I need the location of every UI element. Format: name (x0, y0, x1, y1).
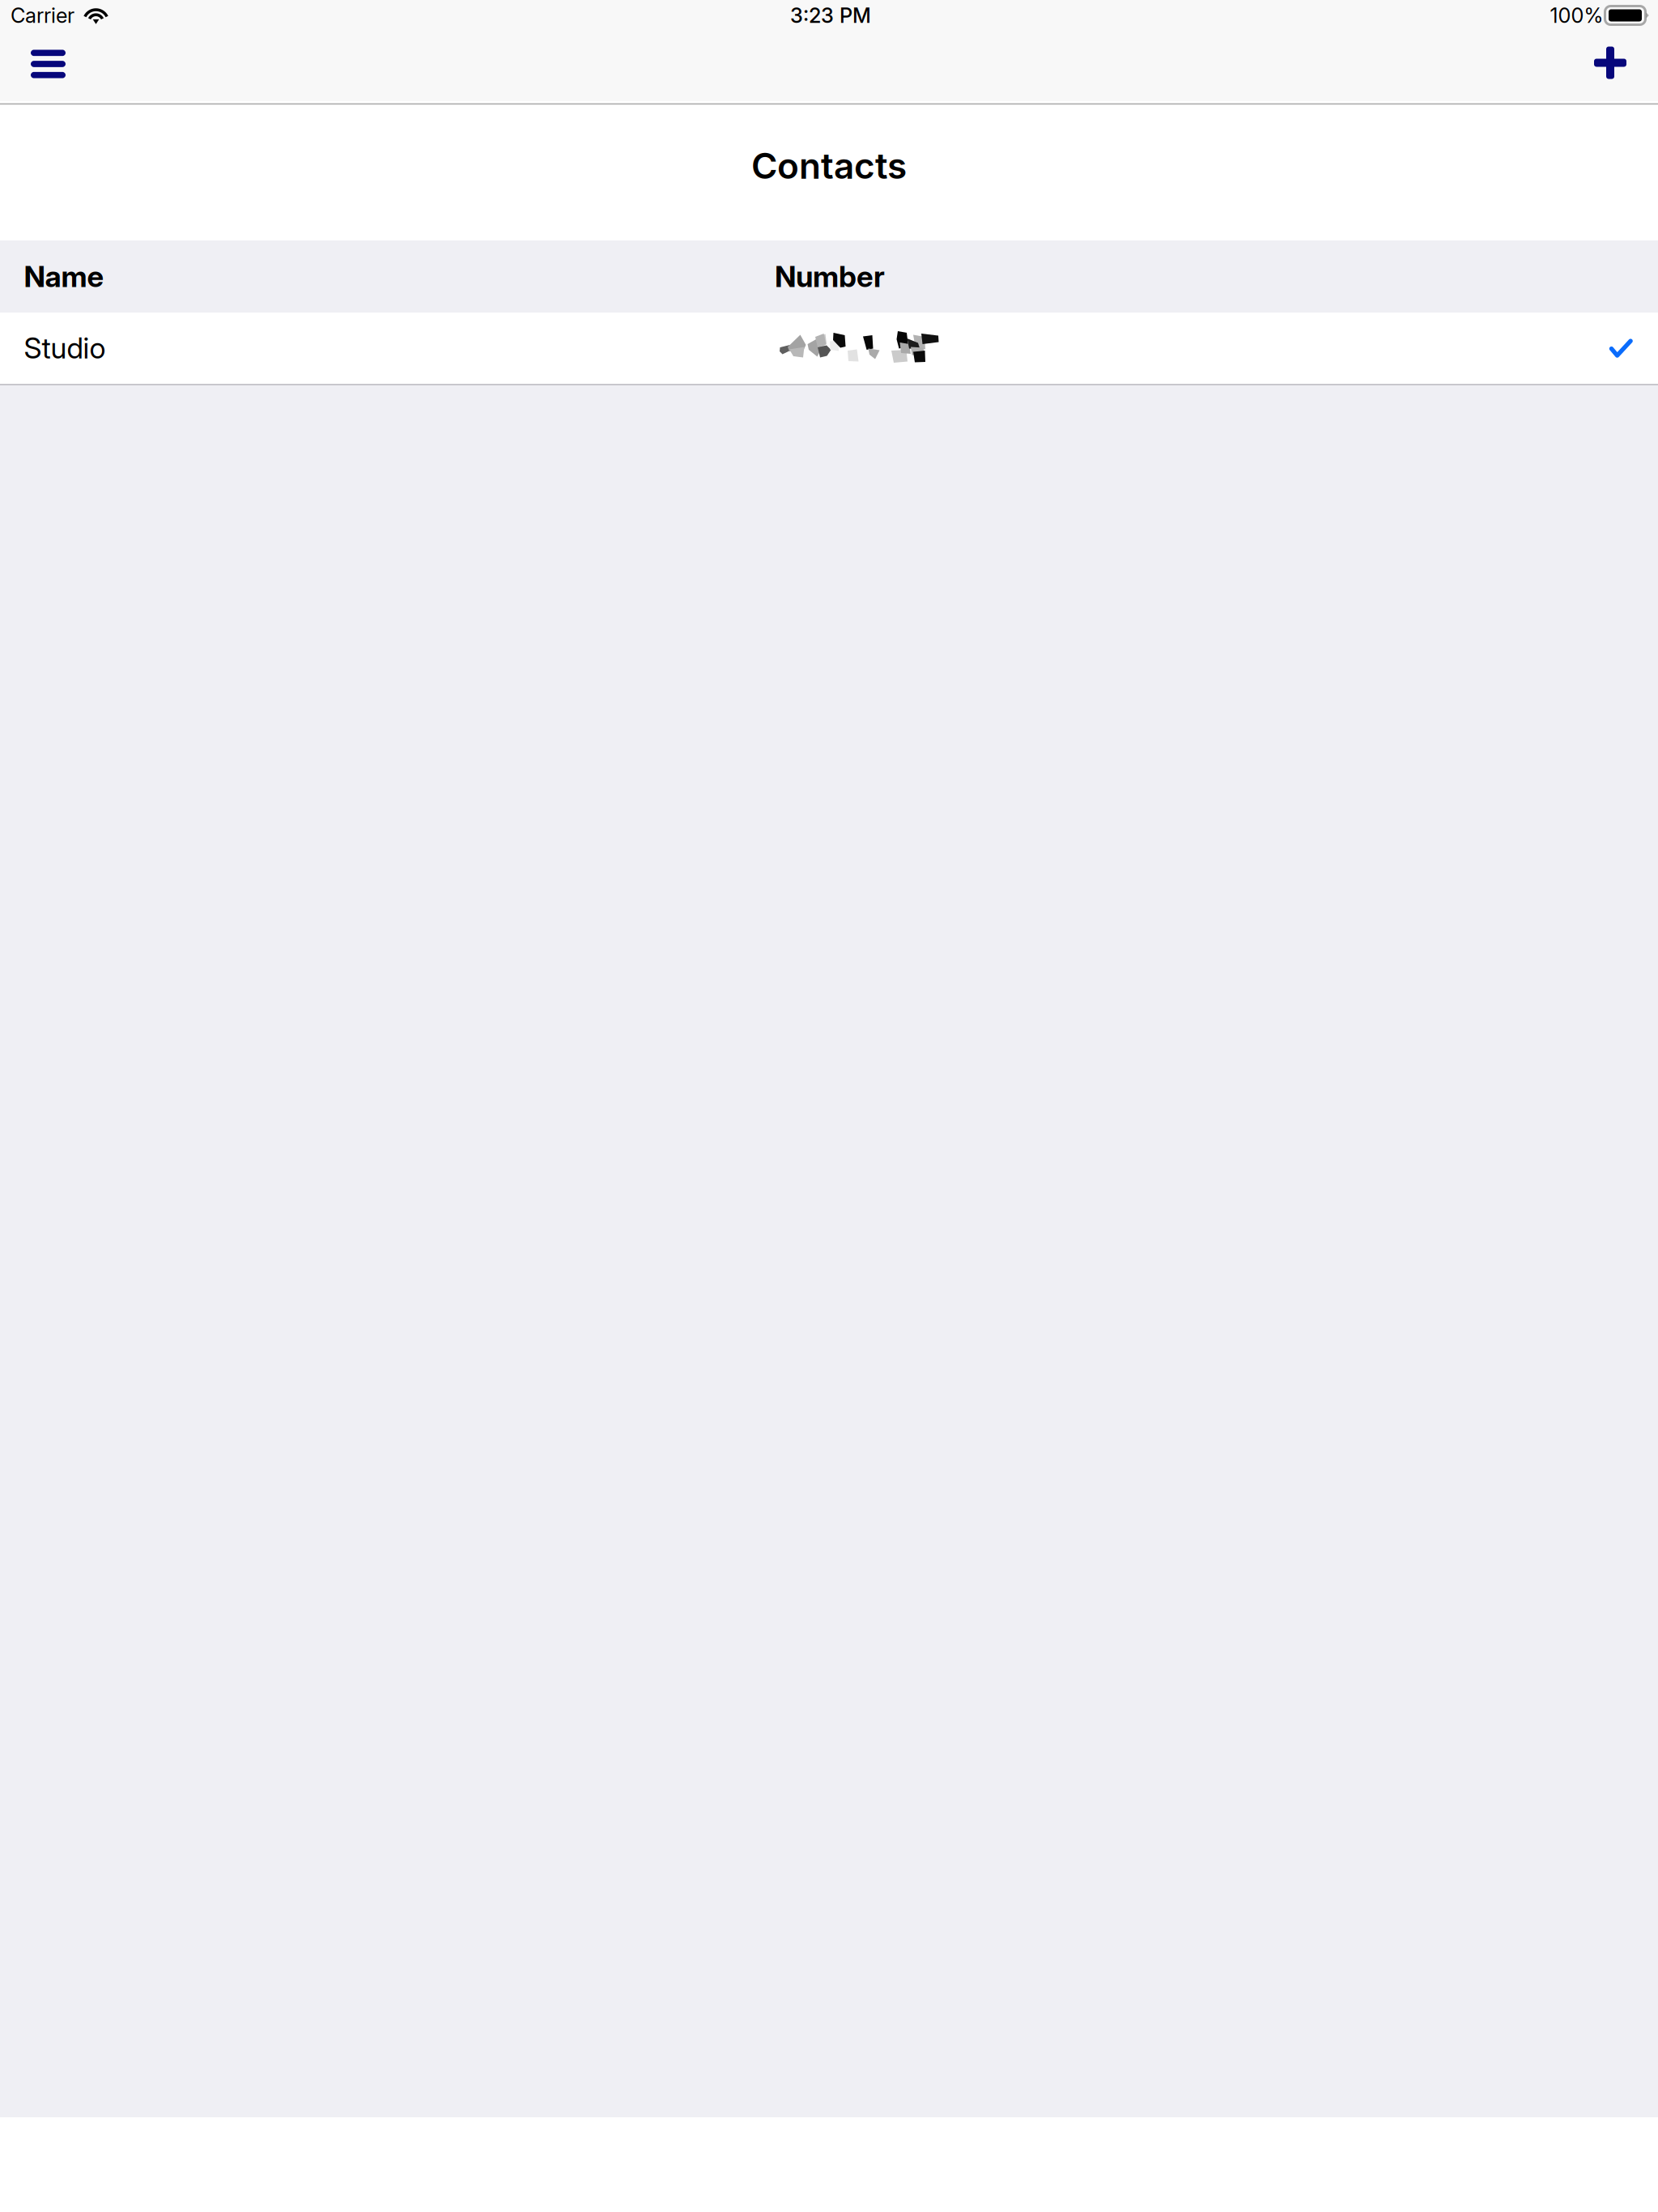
staticText: Studio (24, 331, 106, 365)
staticText: Carrier (11, 3, 74, 28)
staticText: Number (775, 259, 885, 294)
button[interactable]: Studio (0, 313, 1658, 384)
staticText: Name (24, 259, 104, 294)
button[interactable]: Menu (0, 38, 85, 95)
staticText: 100% (1550, 3, 1603, 28)
button[interactable]: Add (1575, 37, 1658, 96)
staticText: 3:23 PM (790, 3, 871, 28)
staticText: Contacts (751, 144, 907, 187)
